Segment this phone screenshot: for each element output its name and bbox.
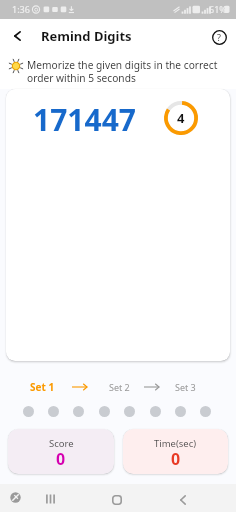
staticText: Remind Digits xyxy=(41,27,132,45)
staticText: Memorize the given digits in the correct… xyxy=(27,58,230,85)
staticText: 4 xyxy=(177,109,185,127)
button[interactable]: Help xyxy=(207,25,231,49)
staticText: 0 xyxy=(171,448,181,470)
button[interactable]: Back xyxy=(4,23,30,49)
button[interactable]: Score xyxy=(8,429,114,474)
button[interactable]: Set 1 xyxy=(30,379,55,395)
staticText: 61% xyxy=(209,3,227,15)
staticText: Time(sec) xyxy=(154,437,197,450)
staticText: Set 2 xyxy=(109,381,130,393)
staticText: Score xyxy=(49,437,74,450)
staticText: 171447 xyxy=(33,99,136,140)
button[interactable]: Recent apps xyxy=(40,488,62,510)
button[interactable]: Do not disturb xyxy=(5,487,26,508)
staticText: Set 3 xyxy=(175,381,196,393)
staticText: Set 1 xyxy=(30,380,55,394)
button[interactable]: Set 3 xyxy=(175,379,196,395)
staticText: 1:36 xyxy=(12,3,30,15)
button[interactable]: Time(sec) xyxy=(123,429,228,474)
button[interactable]: Set 2 xyxy=(109,379,130,395)
staticText: ? xyxy=(217,31,221,43)
staticText: 0 xyxy=(56,448,66,470)
button[interactable]: Home xyxy=(105,488,128,511)
button[interactable]: Back xyxy=(172,489,194,511)
